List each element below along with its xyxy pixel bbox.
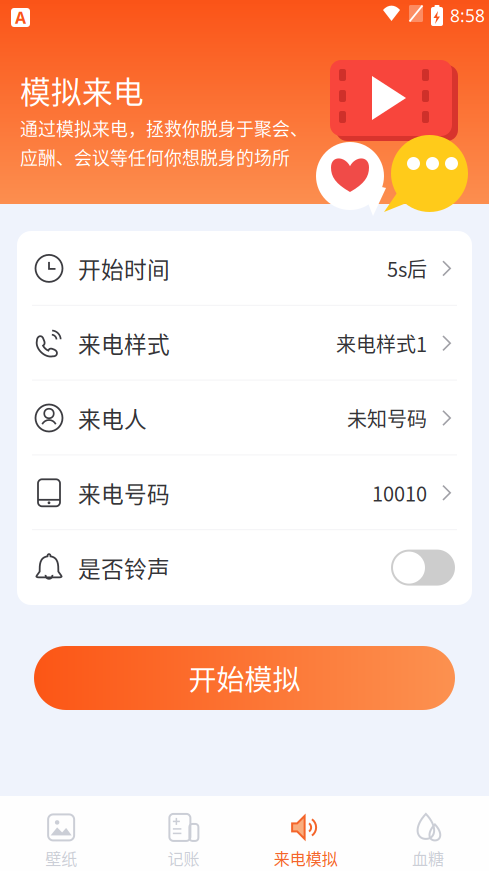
staticText: 未知号码 (347, 403, 427, 432)
staticText: 来电样式 (78, 327, 170, 360)
button[interactable]: 来电模拟 (244, 796, 367, 871)
staticText: A (15, 7, 26, 28)
staticText: 10010 (372, 478, 427, 507)
staticText: 来电号码 (78, 476, 170, 509)
staticText: 8:58 (450, 4, 485, 27)
staticText: 5s后 (387, 254, 427, 283)
staticText: 应酬、会议等任何你想脱身的场所 (20, 144, 290, 170)
button[interactable]: 是否铃声 (17, 530, 472, 605)
button[interactable]: 血糖 (367, 796, 489, 871)
staticText: 开始模拟 (188, 658, 300, 698)
staticText: 通过模拟来电，拯救你脱身于聚会、 (20, 115, 308, 141)
button[interactable]: 来电号码 (17, 455, 472, 530)
button[interactable]: 记账 (122, 796, 244, 871)
button[interactable]: 来电样式 (17, 306, 472, 381)
staticText: 记账 (167, 846, 199, 870)
staticText: 血糖 (412, 846, 444, 870)
staticText: 来电人 (78, 402, 147, 434)
button[interactable]: 开始模拟 (34, 646, 455, 710)
button[interactable]: 开始时间 (17, 231, 472, 306)
staticText: 是否铃声 (78, 551, 170, 584)
staticText: 开始时间 (78, 252, 170, 285)
staticText: 来电模拟 (274, 846, 338, 870)
button[interactable]: 来电人 (17, 381, 472, 455)
button[interactable]: 壁纸 (0, 796, 122, 871)
staticText: 来电样式1 (336, 329, 427, 358)
staticText: 壁纸 (45, 846, 77, 870)
staticText: 模拟来电 (20, 68, 144, 112)
